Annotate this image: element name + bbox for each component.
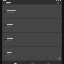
- button[interactable]: Downloads: [3, 33, 61, 46]
- button[interactable]: Playlists: [3, 47, 61, 60]
- button[interactable]: Add: [58, 57, 61, 60]
- button[interactable]: Profile: [46, 61, 51, 64]
- staticText: 18 tracks: [7, 26, 12, 27]
- staticText: Library: [6, 1, 11, 3]
- staticText: 9 lists: [7, 54, 10, 55]
- staticText: Recently added: [7, 10, 16, 12]
- staticText: 42 items: [6, 3, 11, 4]
- staticText: Profile: [47, 63, 50, 64]
- button[interactable]: Home: [13, 61, 18, 64]
- button[interactable]: Favourites: [3, 19, 61, 32]
- staticText: Home: [14, 63, 17, 64]
- staticText: Downloads: [7, 38, 14, 40]
- button[interactable]: Menu: [3, 2, 5, 4]
- staticText: Playlists: [7, 52, 12, 54]
- staticText: Favourites: [7, 24, 13, 26]
- staticText: 6 tracks: [7, 40, 11, 41]
- staticText: Updated today: [7, 12, 14, 13]
- button[interactable]: Browse: [30, 61, 35, 64]
- button[interactable]: Recently added: [3, 5, 61, 18]
